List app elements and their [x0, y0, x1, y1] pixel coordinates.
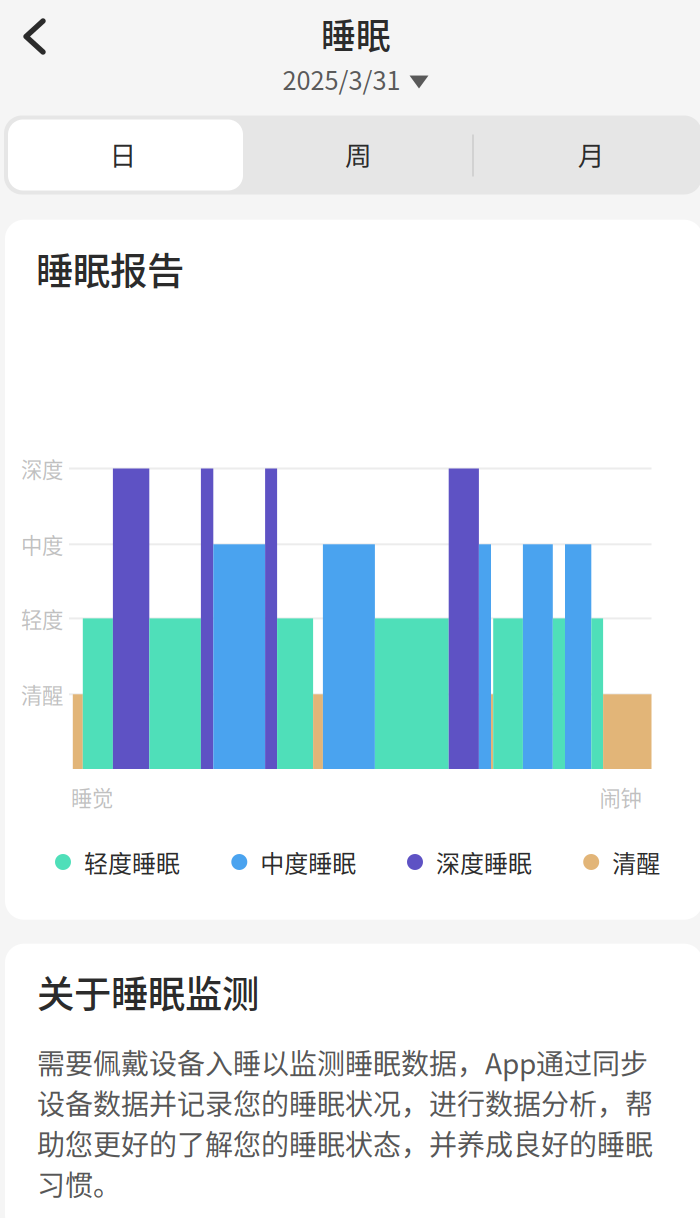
button[interactable]: 2025/3/31 — [6, 62, 700, 96]
staticText: 睡眠 — [321, 9, 391, 59]
staticText: 中度睡眠 — [260, 845, 356, 879]
staticText: 深度 — [21, 453, 63, 484]
staticText: 中度 — [21, 529, 63, 560]
staticText: 清醒 — [612, 845, 660, 879]
staticText: 睡觉 — [71, 782, 113, 812]
staticText: 2025/3/31 — [282, 61, 400, 97]
button[interactable]: 返回 — [3, 5, 65, 69]
staticText: 需要佩戴设备入睡以监测睡眠数据，App通过同步设备数据并记录您的睡眠状况，进行数… — [37, 1042, 653, 1204]
staticText: 轻度 — [21, 603, 63, 634]
button[interactable]: 月 — [475, 114, 700, 193]
staticText: 深度睡眠 — [436, 845, 532, 879]
staticText: 清醒 — [21, 679, 63, 710]
staticText: 睡眠报告 — [36, 242, 184, 296]
button[interactable]: 周 — [242, 114, 474, 193]
staticText: 周 — [345, 135, 372, 173]
staticText: 闹钟 — [599, 782, 641, 812]
button[interactable]: 日 — [5, 118, 240, 189]
staticText: 月 — [578, 135, 605, 173]
staticText: 轻度睡眠 — [84, 845, 180, 879]
staticText: 日 — [109, 135, 136, 173]
staticText: 关于睡眠监测 — [37, 965, 259, 1019]
